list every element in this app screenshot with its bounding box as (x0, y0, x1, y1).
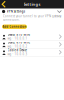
button[interactable]: Device 810 Wire (0, 33, 64, 41)
staticText: Device 470 Wire (8, 41, 31, 44)
button[interactable]: Cabled Device (0, 48, 64, 56)
button[interactable]: Add Connection (2, 24, 27, 29)
staticText: Connect your tunnel to your VPN gateway … (3, 14, 61, 22)
staticText: VPN Settings (7, 10, 25, 13)
staticText: Add Connection (2, 25, 26, 28)
staticText: Cabled Device (8, 49, 28, 52)
staticText: wg · 10.0.0.3 (8, 52, 28, 56)
staticText: Device 810 Wire (8, 33, 31, 36)
button[interactable]: Back (0, 0, 8, 8)
button[interactable]: Device 470 Wire (0, 41, 64, 48)
button[interactable]: VPN Settings (0, 8, 64, 14)
staticText: wg · 10.0.0.1 (8, 37, 28, 40)
staticText: wg · 10.0.0.2 (8, 45, 28, 48)
staticText: Settings (23, 2, 40, 7)
